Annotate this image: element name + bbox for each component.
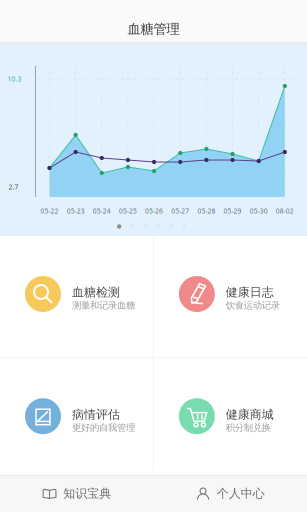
staticText: 05-29 — [223, 207, 241, 215]
staticText: 积分制兑换 — [226, 422, 271, 433]
staticText: 个人中心 — [217, 486, 265, 501]
staticText: 知识宝典 — [63, 486, 111, 501]
staticText: 病情评估 — [72, 407, 120, 422]
staticText: 08-02 — [276, 207, 294, 215]
staticText: 2.7 — [8, 183, 18, 191]
staticText: 健康日志 — [226, 285, 274, 300]
staticText: 更好的自我管理 — [72, 422, 135, 433]
staticText: 05-25 — [119, 207, 137, 215]
staticText: 05-30 — [250, 207, 268, 215]
staticText: 测量和记录血糖 — [72, 300, 135, 311]
staticText: 10.3 — [7, 75, 21, 83]
button[interactable]: 健康商城 — [154, 358, 307, 471]
staticText: 05-28 — [197, 207, 215, 215]
button[interactable]: 知识宝典 — [0, 475, 153, 512]
staticText: 05-23 — [67, 207, 85, 215]
staticText: 饮食运动记录 — [226, 300, 280, 311]
button[interactable]: 个人中心 — [153, 475, 307, 512]
staticText: 05-26 — [145, 207, 163, 215]
staticText: 血糖管理 — [127, 21, 179, 37]
staticText: 05-24 — [93, 207, 111, 215]
button[interactable]: 病情评估 — [0, 358, 153, 471]
staticText: 05-22 — [40, 207, 58, 215]
staticText: 05-27 — [171, 207, 189, 215]
staticText: 血糖检测 — [72, 285, 120, 300]
button[interactable]: 血糖检测 — [0, 236, 153, 357]
button[interactable]: 健康日志 — [154, 236, 307, 357]
staticText: 健康商城 — [226, 407, 274, 422]
